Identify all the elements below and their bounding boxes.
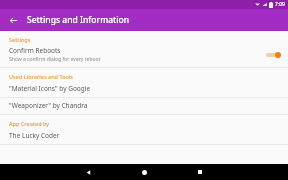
button[interactable]: Confirm Reboots	[0, 44, 288, 67]
staticText: Show a confirm dialog for every reboot	[9, 56, 101, 63]
staticText: Confirm Reboots	[9, 46, 61, 55]
staticText: Used Libraries and Tools	[9, 73, 74, 80]
staticText: Settings and Information	[27, 14, 130, 26]
button[interactable]: Back	[60, 164, 116, 180]
button[interactable]: Home	[116, 164, 172, 180]
staticText: App Created by	[9, 120, 50, 127]
button[interactable]: Recent apps	[172, 164, 228, 180]
button[interactable]: "Weaponizer" by Chandra	[0, 98, 288, 114]
staticText: 7:09	[275, 1, 285, 8]
staticText: Settings	[9, 36, 31, 43]
staticText: "Material Icons" by Google	[9, 84, 91, 93]
staticText: "Weaponizer" by Chandra	[9, 101, 88, 110]
button[interactable]: The Lucky Coder	[0, 128, 288, 144]
staticText: The Lucky Coder	[9, 131, 60, 140]
button[interactable]: "Material Icons" by Google	[0, 81, 288, 97]
button[interactable]: Back	[5, 12, 21, 28]
